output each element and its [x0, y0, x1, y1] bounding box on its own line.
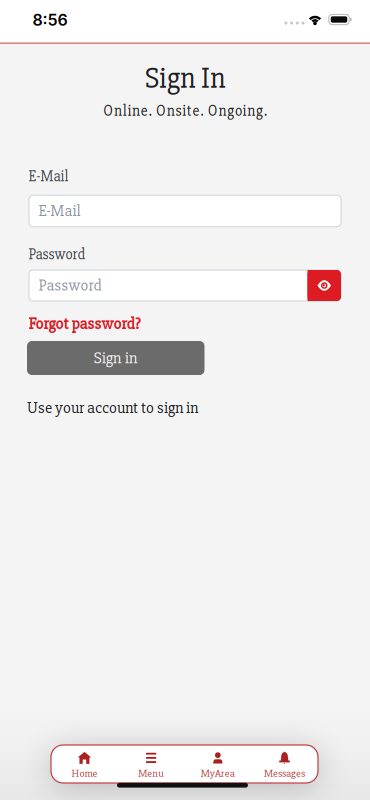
staticText: Password: [38, 276, 101, 295]
staticText: Use your account to sign in: [27, 398, 198, 418]
button[interactable]: Forgot password?: [0, 314, 370, 334]
button[interactable]: Show password: [307, 270, 341, 301]
button[interactable]: MyArea: [184, 747, 251, 781]
staticText: Messages: [264, 767, 305, 780]
staticText: Home: [71, 767, 97, 780]
staticText: Password: [28, 245, 85, 264]
button[interactable]: Password: [29, 270, 341, 301]
button[interactable]: E-Mail: [29, 195, 341, 227]
staticText: E-Mail: [38, 201, 80, 221]
staticText: Online. Onsite. Ongoing.: [103, 102, 267, 120]
staticText: Sign in: [94, 348, 138, 368]
staticText: Forgot password?: [28, 314, 140, 334]
staticText: Sign In: [145, 60, 225, 97]
button[interactable]: Menu: [118, 747, 184, 781]
staticText: Menu: [138, 767, 164, 780]
staticText: MyArea: [201, 767, 235, 780]
staticText: E-Mail: [28, 167, 68, 186]
button[interactable]: Home: [51, 747, 118, 781]
button[interactable]: Sign in: [27, 341, 204, 375]
button[interactable]: Messages: [251, 747, 318, 781]
staticText: 8:56: [32, 10, 67, 30]
